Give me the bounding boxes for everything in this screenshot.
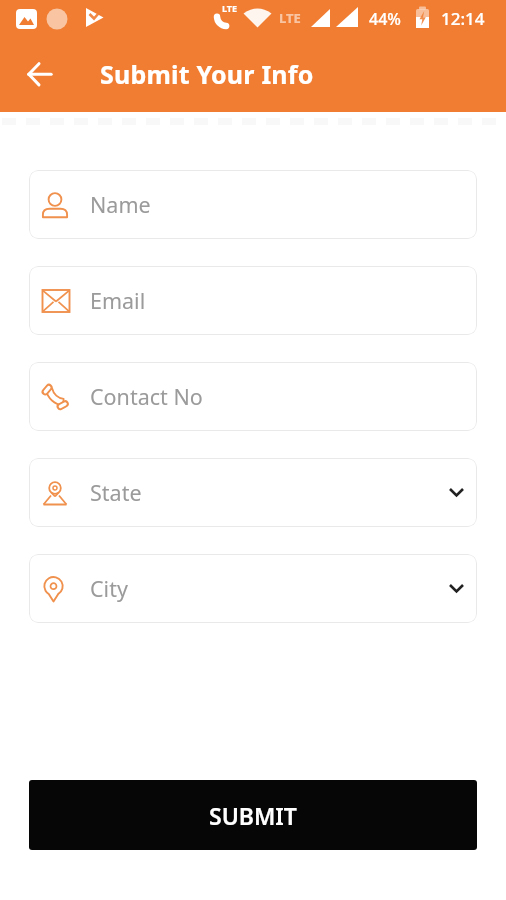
staticText: 12:14 bbox=[441, 7, 485, 30]
button[interactable]: City bbox=[29, 554, 477, 623]
button[interactable]: Name bbox=[29, 170, 477, 239]
staticText: Submit Your Info bbox=[100, 57, 314, 91]
button[interactable]: Contact No bbox=[29, 362, 477, 431]
button[interactable] bbox=[19, 53, 61, 95]
staticText: 44% bbox=[369, 8, 401, 30]
staticText: SUBMIT bbox=[209, 800, 297, 831]
button[interactable]: Email bbox=[29, 266, 477, 335]
staticText: LTE bbox=[279, 9, 301, 27]
staticText: State bbox=[90, 478, 142, 507]
staticText: Email bbox=[90, 286, 146, 315]
staticText: City bbox=[90, 574, 128, 603]
staticText: Contact No bbox=[90, 382, 203, 411]
staticText: Name bbox=[90, 190, 151, 219]
button[interactable]: State bbox=[29, 458, 477, 527]
button[interactable]: SUBMIT bbox=[29, 780, 477, 850]
staticText: LTE bbox=[222, 2, 238, 14]
